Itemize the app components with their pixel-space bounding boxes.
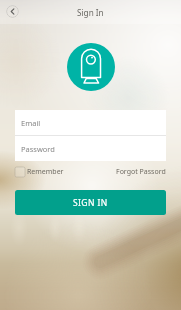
staticText: Password xyxy=(21,144,55,154)
button[interactable]: SIGN IN xyxy=(15,190,166,215)
staticText: Email xyxy=(21,118,41,128)
button[interactable]: Back xyxy=(6,5,19,18)
staticText: Sign In xyxy=(77,7,104,18)
button[interactable]: Forgot Passord xyxy=(116,167,166,177)
button[interactable]: Email xyxy=(15,110,166,135)
button[interactable]: Remember xyxy=(15,167,64,177)
staticText: SIGN IN xyxy=(73,197,108,209)
button[interactable]: Password xyxy=(15,136,166,161)
staticText: Forgot Passord xyxy=(116,167,166,177)
staticText: Remember xyxy=(27,167,64,177)
